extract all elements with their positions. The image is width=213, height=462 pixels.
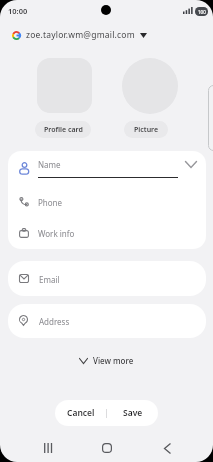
staticText: Work info — [38, 228, 75, 239]
staticText: Name — [38, 159, 61, 170]
staticText: Profile card — [44, 125, 83, 135]
staticText: Address — [39, 316, 70, 327]
staticText: 10:00 — [8, 6, 28, 16]
staticText: zoe.taylor.wm@gmail.com — [26, 29, 135, 41]
button[interactable] — [122, 58, 178, 114]
staticText: View more — [93, 355, 134, 366]
button[interactable]: Profile card — [35, 121, 91, 138]
staticText: 100 — [198, 9, 206, 15]
button[interactable]: View more — [75, 355, 138, 366]
staticText: Phone — [38, 197, 63, 208]
button[interactable] — [98, 439, 116, 457]
button[interactable] — [8, 304, 206, 338]
staticText: Picture — [134, 125, 159, 135]
button[interactable]: Picture — [124, 121, 168, 138]
button[interactable] — [158, 439, 176, 457]
button[interactable]: Name — [8, 151, 206, 187]
button[interactable]: Phone — [8, 188, 206, 219]
button[interactable] — [8, 261, 206, 296]
button[interactable]: Cancel — [55, 400, 106, 426]
button[interactable]: zoe.taylor.wm@gmail.com — [12, 27, 147, 43]
staticText: Email — [39, 274, 60, 285]
staticText: Save — [123, 407, 143, 419]
button[interactable] — [39, 439, 57, 457]
button[interactable]: Work info — [8, 219, 206, 249]
staticText: Cancel — [67, 407, 95, 419]
button[interactable]: Save — [107, 400, 158, 426]
